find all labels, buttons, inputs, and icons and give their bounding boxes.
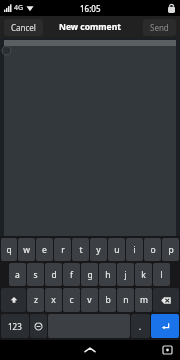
staticText: t (79, 244, 83, 256)
button[interactable]: Enter (151, 314, 179, 338)
button[interactable]: j (117, 263, 134, 286)
button[interactable]: p (162, 238, 179, 261)
staticText: r (61, 244, 65, 256)
button[interactable]: Backspace (153, 288, 179, 312)
button[interactable]: i (126, 238, 143, 261)
button[interactable]: Emoji (30, 314, 47, 338)
staticText: b (105, 294, 111, 306)
staticText: d (51, 269, 57, 281)
button[interactable]: o (144, 238, 161, 261)
button[interactable]: l (153, 263, 170, 286)
button[interactable]: Cancel (4, 19, 43, 36)
button[interactable]: g (81, 263, 98, 286)
staticText: s (33, 269, 38, 281)
staticText: n (123, 294, 129, 306)
button[interactable]: a (9, 263, 26, 286)
staticText: i (133, 244, 136, 256)
button[interactable]: x (45, 288, 62, 312)
button[interactable]: u (108, 238, 125, 261)
staticText: . (139, 321, 142, 332)
staticText: q (6, 244, 12, 256)
staticText: Cancel (11, 22, 36, 33)
button[interactable]: e (36, 238, 53, 261)
button[interactable]: s (27, 263, 44, 286)
button[interactable]: b (99, 288, 116, 312)
staticText: e (42, 244, 47, 256)
button[interactable]: n (117, 288, 134, 312)
button[interactable]: y (90, 238, 107, 261)
staticText: 123 (8, 321, 22, 332)
button[interactable]: c (63, 288, 80, 312)
staticText: k (141, 269, 146, 281)
button[interactable]: w (18, 238, 35, 261)
button[interactable]: Shift (1, 288, 26, 312)
staticText: m (140, 294, 148, 306)
button[interactable]: f (63, 263, 80, 286)
button[interactable]: . (131, 314, 150, 338)
staticText: New comment (59, 21, 121, 33)
staticText: 4G (14, 3, 24, 13)
staticText: v (87, 294, 92, 306)
staticText: x (51, 294, 56, 306)
button[interactable]: 123 (1, 314, 29, 338)
staticText: u (114, 244, 120, 256)
button[interactable]: q (1, 238, 17, 261)
staticText: j (124, 269, 127, 281)
button[interactable]: m (135, 288, 152, 312)
staticText: g (87, 269, 93, 281)
staticText: z (34, 294, 38, 306)
button[interactable]: k (135, 263, 152, 286)
staticText: p (168, 244, 174, 256)
staticText: l (160, 269, 163, 281)
staticText: c (69, 294, 74, 306)
staticText: f (70, 269, 73, 281)
staticText: Send (150, 22, 169, 33)
button[interactable]: h (99, 263, 116, 286)
button[interactable]: v (81, 288, 98, 312)
staticText: w (23, 244, 30, 256)
staticText: a (15, 269, 20, 281)
staticText: y (96, 244, 101, 256)
staticText: o (150, 244, 156, 256)
button[interactable]: z (27, 288, 44, 312)
staticText: 16:05 (80, 3, 101, 14)
button[interactable]: r (54, 238, 71, 261)
button[interactable]: Hide keyboard (79, 340, 101, 360)
staticText: h (105, 269, 111, 281)
button[interactable]: d (45, 263, 62, 286)
button[interactable]: Send (143, 19, 176, 36)
button[interactable]: Switch keyboard (160, 343, 174, 357)
button[interactable]: t (72, 238, 89, 261)
